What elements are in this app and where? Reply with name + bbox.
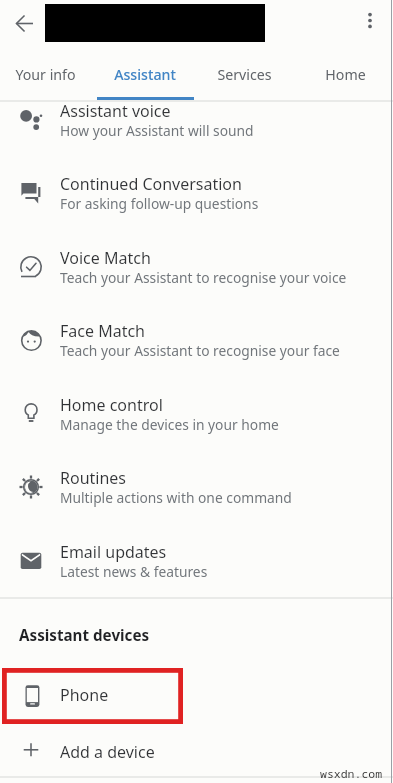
button[interactable]: Add a device: [0, 730, 393, 774]
button[interactable]: Routines: [0, 469, 393, 543]
staticText: wsxdn.com: [320, 766, 383, 782]
button[interactable]: More options: [354, 7, 386, 39]
button[interactable]: Services: [194, 48, 294, 100]
staticText: Phone: [60, 684, 109, 706]
button[interactable]: Email updates: [0, 543, 393, 617]
staticText: Home: [325, 65, 366, 84]
button[interactable]: Face Match: [0, 322, 393, 396]
button[interactable]: Voice Match: [0, 249, 393, 323]
staticText: Assistant voice: [60, 100, 171, 122]
staticText: Teach your Assistant to recognise your f…: [60, 341, 340, 360]
staticText: Email updates: [60, 541, 167, 563]
staticText: How your Assistant will sound: [60, 121, 254, 140]
button[interactable]: Assistant: [95, 48, 195, 100]
button[interactable]: Home: [295, 48, 393, 100]
staticText: Assistant: [114, 65, 176, 84]
staticText: For asking follow-up questions: [60, 194, 259, 213]
staticText: Multiple actions with one command: [60, 488, 292, 507]
staticText: Routines: [60, 467, 127, 489]
button[interactable]: Continued Conversation: [0, 175, 393, 249]
staticText: Services: [217, 65, 272, 84]
staticText: Home control: [60, 394, 163, 416]
staticText: Voice Match: [60, 247, 151, 269]
staticText: Manage the devices in your home: [60, 415, 279, 434]
staticText: Add a device: [60, 741, 155, 763]
button[interactable]: Assistant voice: [0, 102, 393, 176]
staticText: Your info: [15, 65, 76, 84]
button[interactable]: Your info: [0, 48, 95, 100]
button[interactable]: Phone: [0, 668, 393, 724]
button[interactable]: Back: [8, 7, 40, 39]
button[interactable]: Home control: [0, 396, 393, 470]
staticText: Latest news & features: [60, 562, 208, 581]
staticText: Teach your Assistant to recognise your v…: [60, 268, 347, 287]
staticText: Continued Conversation: [60, 173, 242, 195]
staticText: Assistant devices: [19, 625, 150, 646]
staticText: Face Match: [60, 320, 145, 342]
